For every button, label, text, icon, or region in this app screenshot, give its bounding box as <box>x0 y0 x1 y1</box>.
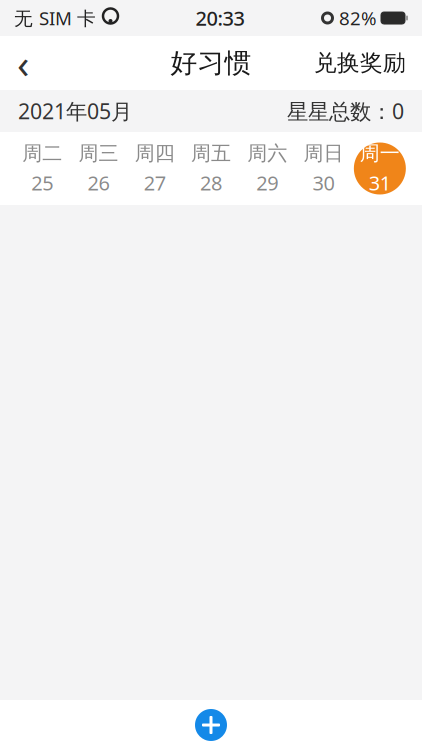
staticText: 兑换奖励 <box>314 49 406 77</box>
button[interactable]: 周日 <box>295 132 352 205</box>
staticText: 28 <box>200 169 222 196</box>
staticText: 无 SIM 卡 <box>14 6 96 30</box>
button[interactable]: 周二 <box>14 132 70 205</box>
staticText: 31 <box>369 169 391 196</box>
staticText: 周四 <box>135 141 175 165</box>
staticText: 2021年05月 <box>18 97 132 125</box>
button[interactable]: 兑换奖励 <box>298 36 422 90</box>
button[interactable]: 周三 <box>70 132 127 205</box>
button[interactable]: 周五 <box>183 132 239 205</box>
staticText: 周日 <box>304 141 344 165</box>
staticText: 25 <box>31 169 53 196</box>
staticText: ‹ <box>17 36 29 89</box>
staticText: 周六 <box>247 141 287 165</box>
button[interactable]: 周一 <box>352 132 408 205</box>
staticText: 周五 <box>191 141 231 165</box>
staticText: 26 <box>87 169 109 196</box>
staticText: 20:33 <box>195 5 244 31</box>
button[interactable]: 周四 <box>127 132 183 205</box>
staticText: 星星总数：0 <box>287 97 404 125</box>
staticText: 周二 <box>22 141 62 165</box>
staticText: 好习惯 <box>170 47 251 79</box>
staticText: 27 <box>144 169 166 196</box>
staticText: 周一 <box>360 141 400 165</box>
staticText: 30 <box>313 169 335 196</box>
staticText: 周三 <box>78 141 118 165</box>
staticText: 82% <box>339 6 377 30</box>
staticText: 29 <box>256 169 278 196</box>
button[interactable]: 周六 <box>239 132 295 205</box>
button[interactable]: 添加习惯 <box>186 700 236 750</box>
button[interactable]: 返回 <box>0 36 46 90</box>
